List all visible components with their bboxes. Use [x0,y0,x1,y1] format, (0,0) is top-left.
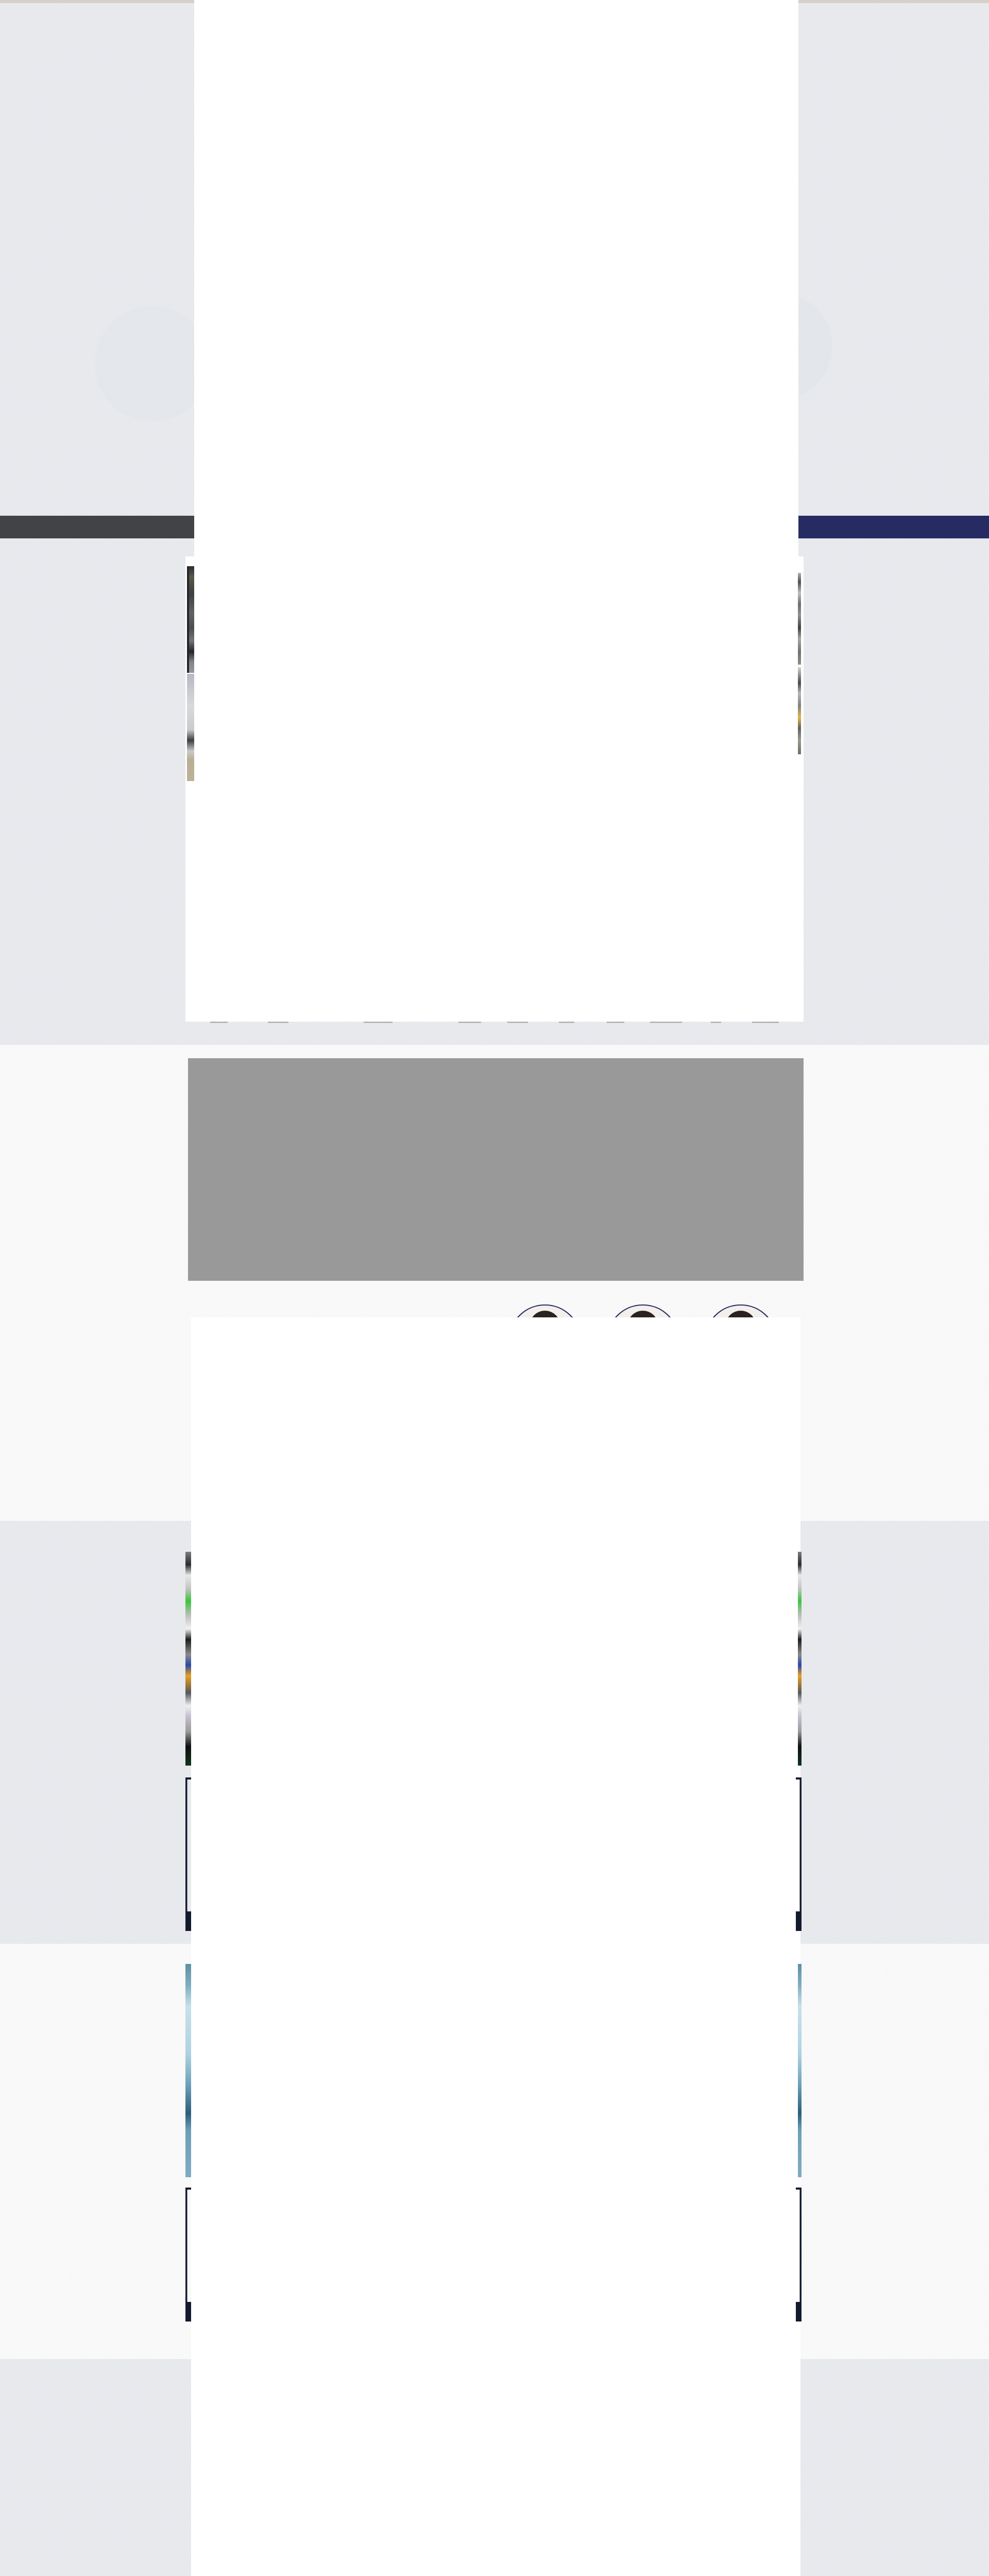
button[interactable]: Account [494,516,989,538]
button[interactable]: Contributor 3 [705,1304,778,1378]
button[interactable]: Phone mockup 2 [185,2188,802,2321]
button[interactable]: Contributor 2 [607,1304,680,1378]
button[interactable]: Featured cover image [188,1058,804,1281]
button[interactable]: Menu [0,516,494,538]
button[interactable]: Screenshot gallery [185,556,804,896]
button[interactable]: Contributor 1 [509,1304,583,1378]
button[interactable]: Case study article [191,1317,800,2576]
button[interactable]: Phone mockup 1 [185,1777,802,1931]
